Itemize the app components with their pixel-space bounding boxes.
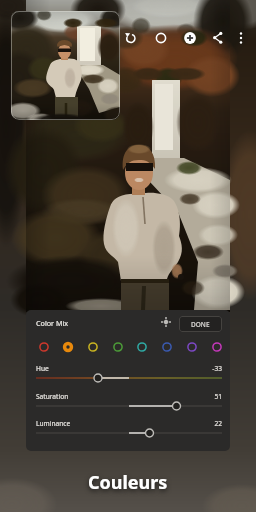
staticText: Color Mix bbox=[36, 318, 69, 328]
staticText: 51 bbox=[198, 392, 222, 402]
button[interactable] bbox=[210, 340, 224, 354]
staticText: Saturation bbox=[36, 392, 69, 401]
button[interactable] bbox=[111, 340, 125, 354]
button[interactable] bbox=[160, 340, 174, 354]
button[interactable] bbox=[26, 401, 230, 411]
staticText: Hue bbox=[36, 364, 49, 373]
button[interactable] bbox=[211, 31, 225, 45]
button[interactable] bbox=[185, 340, 199, 354]
staticText: Luminance bbox=[36, 419, 71, 428]
button[interactable]: DONE bbox=[179, 316, 222, 332]
staticText: -33 bbox=[198, 364, 222, 374]
button[interactable] bbox=[37, 340, 51, 354]
button[interactable] bbox=[154, 31, 168, 45]
button[interactable] bbox=[61, 340, 75, 354]
staticText: 22 bbox=[198, 419, 222, 429]
button[interactable] bbox=[135, 340, 149, 354]
button[interactable] bbox=[159, 315, 173, 329]
button[interactable] bbox=[124, 31, 138, 45]
button[interactable] bbox=[26, 373, 230, 383]
button[interactable] bbox=[234, 31, 248, 45]
button[interactable] bbox=[26, 428, 230, 438]
staticText: Couleurs bbox=[88, 470, 168, 495]
button[interactable] bbox=[11, 11, 120, 120]
button[interactable] bbox=[183, 31, 197, 45]
button[interactable] bbox=[86, 340, 100, 354]
staticText: DONE bbox=[191, 320, 210, 329]
